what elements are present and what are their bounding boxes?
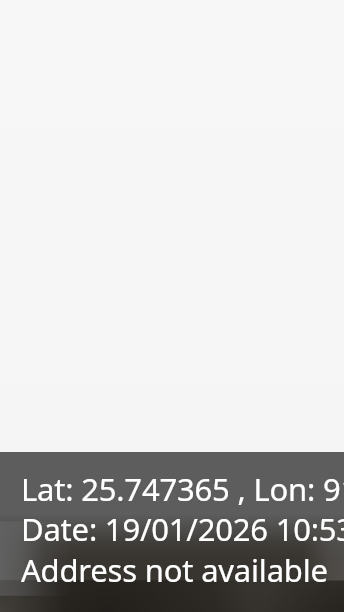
button[interactable] <box>0 452 344 612</box>
staticText: Lat: 25.747365 , Lon: 91.8821 <box>21 468 344 510</box>
staticText: Address not available <box>21 549 328 591</box>
button[interactable]: Camera preview <box>0 0 344 612</box>
staticText: Date: 19/01/2026 10:53 AM <box>21 508 344 550</box>
